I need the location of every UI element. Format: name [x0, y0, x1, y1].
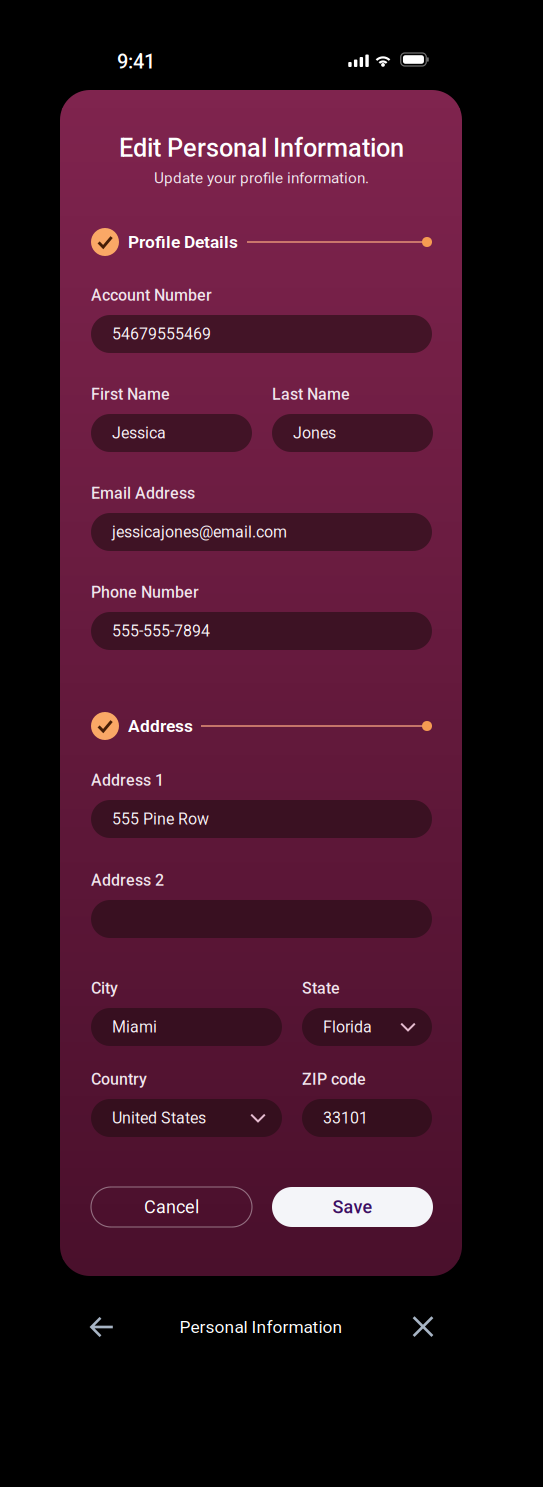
staticText: Email Address: [91, 484, 195, 503]
staticText: jessicajones@email.com: [112, 523, 287, 541]
staticText: Address 2: [91, 871, 164, 890]
button[interactable]: Miami: [91, 1008, 282, 1046]
staticText: Last Name: [272, 385, 350, 404]
staticText: Edit Personal Information: [119, 133, 404, 163]
staticText: 555-555-7894: [112, 622, 210, 640]
staticText: 9:41: [117, 50, 155, 73]
staticText: State: [302, 979, 340, 998]
staticText: First Name: [91, 385, 170, 404]
staticText: City: [91, 979, 118, 998]
staticText: 555 Pine Row: [112, 810, 209, 828]
button[interactable]: Close: [401, 1304, 445, 1349]
staticText: Country: [91, 1070, 147, 1089]
button[interactable]: jessicajones@email.com: [91, 513, 432, 551]
staticText: Save: [332, 1196, 372, 1218]
button[interactable]: United States: [91, 1099, 282, 1137]
button[interactable]: Cancel: [91, 1187, 252, 1227]
button[interactable]: Florida: [302, 1008, 432, 1046]
button[interactable]: Jessica: [91, 414, 252, 452]
button[interactable]: 555-555-7894: [91, 612, 432, 650]
staticText: Cancel: [144, 1196, 199, 1218]
staticText: ZIP code: [302, 1070, 366, 1089]
button[interactable]: [91, 900, 432, 938]
staticText: United States: [112, 1109, 206, 1127]
button[interactable]: Back: [78, 1304, 126, 1350]
staticText: Jessica: [112, 424, 166, 442]
button[interactable]: Jones: [272, 414, 433, 452]
staticText: Florida: [323, 1018, 372, 1036]
staticText: Personal Information: [179, 1317, 342, 1337]
staticText: 33101: [323, 1109, 368, 1127]
staticText: Jones: [293, 424, 336, 442]
staticText: 54679555469: [112, 325, 211, 343]
staticText: Account Number: [91, 286, 212, 305]
button[interactable]: 54679555469: [91, 315, 432, 353]
staticText: Address 1: [91, 771, 164, 790]
button[interactable]: 33101: [302, 1099, 432, 1137]
button[interactable]: 555 Pine Row: [91, 800, 432, 838]
button[interactable]: Save: [272, 1187, 433, 1227]
staticText: Phone Number: [91, 583, 199, 602]
staticText: Profile Details: [128, 232, 238, 252]
staticText: Miami: [112, 1018, 157, 1036]
staticText: Address: [128, 716, 193, 736]
staticText: Update your profile information.: [154, 169, 369, 187]
